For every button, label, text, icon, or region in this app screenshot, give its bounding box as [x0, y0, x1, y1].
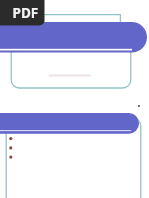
- button[interactable]: Document preview: [0, 0, 149, 198]
